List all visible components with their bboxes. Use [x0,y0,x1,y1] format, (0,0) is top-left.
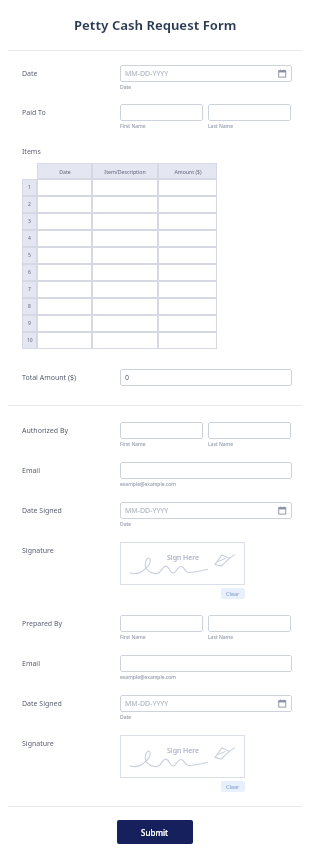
button[interactable] [37,196,92,213]
button[interactable] [37,230,92,247]
staticText: First Name [120,634,146,641]
staticText: Date Signed [22,699,62,709]
staticText: Date [59,168,71,175]
button[interactable] [120,104,203,121]
staticText: Signature [22,739,54,749]
staticText: Signature [22,546,54,556]
staticText: Sign Here [167,553,199,563]
staticText: Paid To [22,108,46,118]
staticText: example@example.com [120,674,176,681]
button[interactable] [208,422,291,439]
staticText: Date [120,84,132,91]
staticText: Date [22,69,38,79]
button[interactable] [37,213,92,230]
button[interactable] [158,196,217,213]
staticText: 3 [28,218,31,225]
staticText: First Name [120,123,146,130]
button[interactable] [158,179,217,196]
staticText: 4 [28,235,31,242]
button[interactable] [158,298,217,315]
staticText: 8 [28,303,31,310]
button[interactable] [37,332,92,349]
staticText: Date [120,714,132,721]
staticText: Items [22,147,41,157]
button[interactable] [92,213,158,230]
staticText: Date Signed [22,506,62,516]
button[interactable] [92,230,158,247]
button[interactable]: Clear [221,781,245,792]
staticText: Clear [226,590,240,597]
other: Open calendar [125,699,287,708]
button[interactable] [37,298,92,315]
button[interactable] [158,247,217,264]
button[interactable] [158,315,217,332]
button[interactable] [37,264,92,281]
button[interactable] [37,247,92,264]
staticText: Total Amount ($) [22,373,77,383]
staticText: 1 [28,184,31,191]
staticText: Email [22,659,40,669]
staticText: Amount ($) [174,168,202,175]
staticText: 2 [28,201,31,208]
button[interactable] [120,422,203,439]
other: Open calendar [125,506,287,515]
staticText: Date [120,521,132,528]
button[interactable] [92,179,158,196]
button[interactable] [92,298,158,315]
button[interactable] [37,281,92,298]
button[interactable] [92,247,158,264]
button[interactable] [92,264,158,281]
staticText: First Name [120,441,146,448]
staticText: MM-DD-YYYY [125,506,169,516]
button[interactable] [208,104,291,121]
staticText: Submit [141,827,169,838]
staticText: 10 [27,337,33,344]
other: Open calendar [125,69,287,78]
button[interactable]: 0 [120,369,292,386]
staticText: MM-DD-YYYY [125,69,169,79]
button[interactable] [158,264,217,281]
staticText: 5 [28,252,31,259]
staticText: Last Name [208,441,234,448]
staticText: Authorized By [22,426,69,436]
button[interactable]: MM-DD-YYYY [120,502,292,519]
staticText: 7 [28,286,31,293]
button[interactable]: Submit [117,820,193,844]
button[interactable] [120,655,292,672]
button[interactable] [120,462,292,479]
button[interactable] [208,615,291,632]
button[interactable] [92,332,158,349]
button[interactable] [158,281,217,298]
staticText: Petty Cash Request Form [74,16,237,34]
button[interactable] [158,332,217,349]
button[interactable]: MM-DD-YYYY [120,65,292,82]
staticText: Clear [226,783,240,790]
button[interactable] [37,179,92,196]
button[interactable] [120,615,203,632]
staticText: Email [22,466,40,476]
button[interactable]: Signature pad, sign here [120,542,245,585]
staticText: 9 [28,320,31,327]
button[interactable] [92,281,158,298]
staticText: example@example.com [120,481,176,488]
staticText: Prepared By [22,619,63,629]
staticText: 0 [125,373,130,383]
button[interactable]: MM-DD-YYYY [120,695,292,712]
staticText: MM-DD-YYYY [125,699,169,709]
staticText: Item/Description [104,168,146,175]
staticText: Last Name [208,123,234,130]
button[interactable]: Signature pad, sign here [120,735,245,778]
staticText: 6 [28,269,31,276]
staticText: Last Name [208,634,234,641]
button[interactable] [92,196,158,213]
button[interactable] [158,230,217,247]
button[interactable] [37,315,92,332]
staticText: Sign Here [167,746,199,756]
button[interactable] [92,315,158,332]
button[interactable]: Clear [221,588,245,599]
button[interactable] [158,213,217,230]
